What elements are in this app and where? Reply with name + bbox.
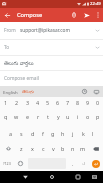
button[interactable]: From [4, 22, 100, 39]
button[interactable]: b [58, 141, 68, 156]
button[interactable]: f [38, 125, 48, 141]
button[interactable]: . [67, 156, 78, 171]
staticText: u [66, 113, 70, 120]
staticText: t [47, 113, 49, 120]
button[interactable]: 8 [73, 97, 83, 108]
staticText: l [92, 130, 94, 137]
staticText: తెలుగు [22, 89, 34, 95]
button[interactable]: o [83, 108, 93, 125]
staticText: x [31, 145, 34, 152]
staticText: i [77, 113, 79, 120]
staticText: s [20, 130, 23, 137]
button[interactable]: 9 [83, 97, 93, 108]
staticText: 0 [96, 99, 100, 106]
button[interactable]: Recent apps [71, 171, 84, 183]
button[interactable]: English [0, 86, 20, 97]
button[interactable]: h [58, 125, 68, 141]
button[interactable]: Send [80, 8, 93, 22]
button[interactable]: Switch keyboard [88, 171, 101, 183]
button[interactable]: Hide keyboard [19, 171, 32, 183]
button[interactable]: Backspace [88, 141, 103, 156]
staticText: 9 [86, 99, 90, 106]
button[interactable]: Keyboard settings [90, 86, 103, 97]
button[interactable]: ?123 [0, 156, 13, 171]
staticText: v [52, 145, 55, 152]
button[interactable]: m [78, 141, 88, 156]
button[interactable]: Back [0, 8, 15, 22]
staticText: c [42, 145, 45, 152]
button[interactable]: Emoticon [78, 156, 88, 171]
button[interactable]: l [88, 125, 98, 141]
button[interactable]: c [38, 141, 48, 156]
button[interactable]: Compose email [4, 71, 99, 86]
button[interactable]: 1 [0, 97, 11, 108]
button[interactable]: i [73, 108, 83, 125]
button[interactable]: g [48, 125, 58, 141]
staticText: h [61, 130, 65, 137]
button[interactable]: n [68, 141, 78, 156]
staticText: తెలుగు వార్తలు [4, 59, 34, 67]
button[interactable]: z [16, 141, 27, 156]
staticText: a [9, 130, 13, 137]
button[interactable]: x [27, 141, 38, 156]
staticText: o [86, 113, 90, 120]
button[interactable]: d [27, 125, 38, 141]
staticText: j [72, 130, 74, 137]
button[interactable]: s [16, 125, 27, 141]
staticText: p [96, 113, 100, 120]
button[interactable]: Home [45, 171, 58, 183]
button[interactable]: Enter [92, 160, 100, 168]
button[interactable]: p [93, 108, 103, 125]
button[interactable]: v [48, 141, 58, 156]
button[interactable]: a [5, 125, 16, 141]
button[interactable]: 3 [22, 97, 33, 108]
button[interactable]: 7 [63, 97, 73, 108]
button[interactable]: తెలుగు వార్తలు [4, 56, 99, 70]
button[interactable]: To [4, 40, 100, 55]
button[interactable]: Emoji [13, 156, 27, 171]
button[interactable]: 6 [53, 97, 63, 108]
button[interactable]: j [68, 125, 78, 141]
staticText: e [26, 113, 30, 120]
staticText: 5 [46, 99, 50, 106]
staticText: n [71, 145, 75, 152]
staticText: 8 [76, 99, 80, 106]
staticText: f [42, 130, 44, 137]
button[interactable]: 2 [11, 97, 22, 108]
staticText: 4 [36, 99, 40, 106]
button[interactable]: More options [93, 8, 103, 22]
staticText: Compose email [4, 75, 39, 82]
staticText: support@ipikasar.com [20, 27, 70, 34]
button[interactable]: w [11, 108, 22, 125]
button[interactable]: r [33, 108, 43, 125]
staticText: q [4, 113, 8, 120]
button[interactable]: తెలుగు [20, 86, 35, 97]
button[interactable]: e [22, 108, 33, 125]
staticText: m [80, 145, 86, 152]
staticText: ?123 [3, 161, 11, 166]
button[interactable]: t [43, 108, 53, 125]
button[interactable]: Shift [0, 141, 16, 156]
staticText: From [4, 27, 16, 34]
button[interactable]: u [63, 108, 73, 125]
staticText: r [37, 113, 40, 120]
button[interactable]: 0 [93, 97, 103, 108]
staticText: z [20, 145, 23, 152]
button[interactable]: k [78, 125, 88, 141]
staticText: k [82, 130, 85, 137]
button[interactable]: Attach file [67, 8, 80, 22]
staticText: English [3, 89, 18, 95]
button[interactable]: 4 [33, 97, 43, 108]
staticText: To [4, 44, 10, 51]
staticText: 3 [26, 99, 30, 106]
staticText: :-) [82, 162, 85, 166]
staticText: 1 [4, 99, 8, 106]
staticText: 22:49 [90, 1, 101, 7]
staticText: 2 [15, 99, 19, 106]
button[interactable]: Recent [79, 86, 90, 97]
staticText: g [51, 130, 55, 137]
button[interactable]: 5 [43, 97, 53, 108]
button[interactable]: y [53, 108, 63, 125]
button[interactable]: q [0, 108, 11, 125]
